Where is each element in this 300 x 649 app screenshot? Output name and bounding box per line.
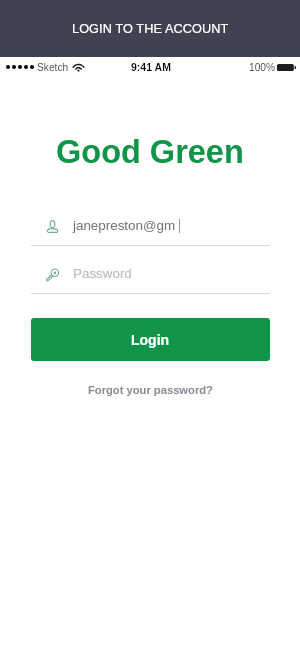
other: Password (46, 268, 59, 281)
button[interactable]: Password (31, 261, 270, 294)
staticText: Login (131, 332, 170, 348)
staticText: Forgot your password? (88, 384, 213, 397)
button[interactable]: User name (31, 213, 270, 246)
staticText: 9:41 AM (131, 61, 171, 73)
staticText: LOGIN TO THE ACCOUNT (72, 22, 229, 36)
staticText: Password (73, 266, 132, 281)
button[interactable]: Forgot your password? (78, 381, 223, 400)
staticText: Good Green (56, 134, 244, 170)
other: User name (47, 220, 58, 233)
staticText: 100% (249, 62, 276, 73)
staticText: janepreston@gm (73, 218, 176, 233)
button[interactable]: Login (31, 318, 270, 361)
staticText: Sketch (37, 62, 69, 73)
